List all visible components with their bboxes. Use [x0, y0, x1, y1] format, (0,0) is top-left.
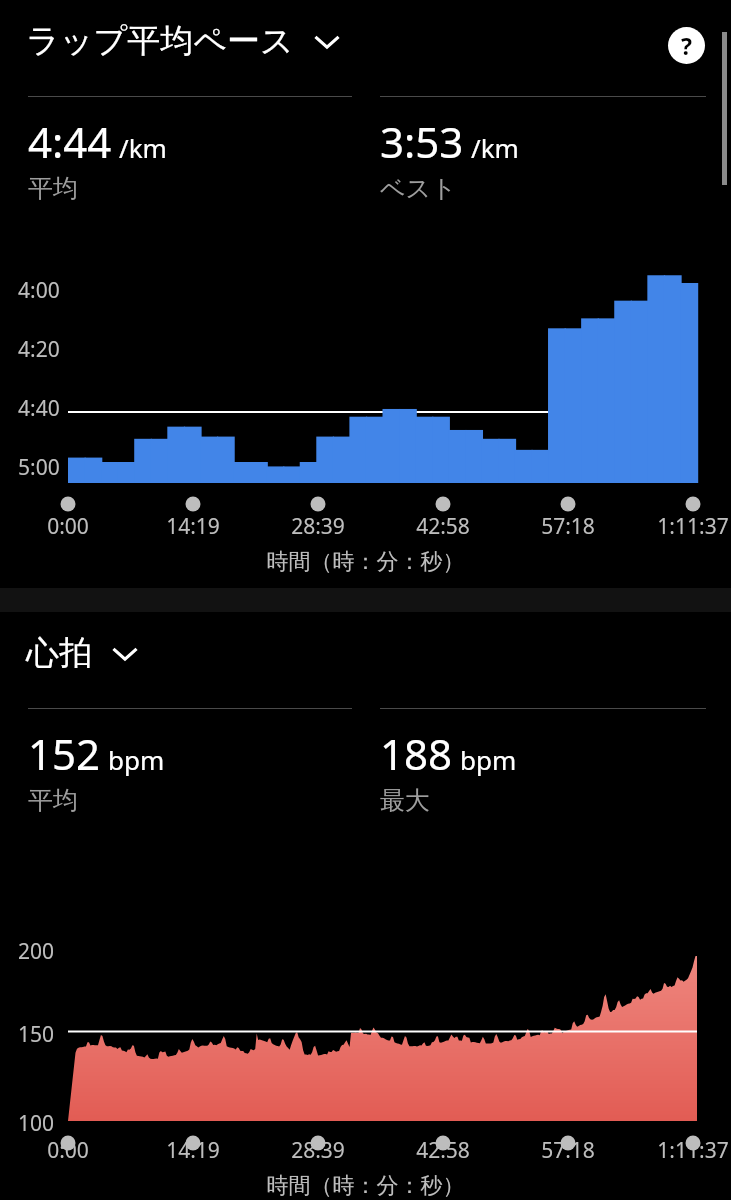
- staticText: /km: [119, 130, 167, 165]
- staticText: 0:00: [8, 512, 128, 541]
- staticText: ?: [681, 30, 692, 61]
- button[interactable]: 心拍: [26, 632, 142, 674]
- staticText: bpm: [460, 742, 517, 777]
- staticText: 5:00: [18, 453, 60, 482]
- staticText: 4:44: [28, 113, 112, 170]
- staticText: 57:18: [508, 1136, 628, 1165]
- staticText: 時間（時：分：秒）: [0, 1172, 731, 1200]
- staticText: 4:00: [18, 276, 60, 305]
- staticText: ラップ平均ペース: [26, 20, 294, 62]
- staticText: 57:18: [508, 512, 628, 541]
- staticText: 14:19: [133, 512, 253, 541]
- staticText: 最大: [380, 785, 430, 816]
- staticText: 1:11:37: [633, 1136, 731, 1165]
- staticText: 4:20: [18, 335, 60, 364]
- staticText: bpm: [108, 742, 165, 777]
- button[interactable]: Help: [668, 27, 705, 64]
- staticText: 3:53: [380, 113, 464, 170]
- staticText: 0:00: [8, 1136, 128, 1165]
- staticText: 14:19: [133, 1136, 253, 1165]
- staticText: 150: [18, 1020, 55, 1049]
- staticText: 平均: [28, 173, 78, 204]
- staticText: ベスト: [380, 173, 457, 204]
- staticText: 時間（時：分：秒）: [0, 548, 731, 576]
- staticText: 4:40: [18, 394, 60, 423]
- staticText: 1:11:37: [633, 512, 731, 541]
- staticText: /km: [471, 130, 519, 165]
- staticText: 42:58: [383, 1136, 503, 1165]
- staticText: 心拍: [26, 632, 92, 674]
- staticText: 152: [28, 725, 101, 782]
- staticText: 28:39: [258, 512, 378, 541]
- staticText: 100: [18, 1109, 55, 1138]
- staticText: 28:39: [258, 1136, 378, 1165]
- staticText: 平均: [28, 785, 78, 816]
- staticText: 42:58: [383, 512, 503, 541]
- button[interactable]: ラップ平均ペース: [26, 20, 344, 62]
- staticText: 200: [18, 937, 55, 966]
- staticText: 188: [380, 725, 453, 782]
